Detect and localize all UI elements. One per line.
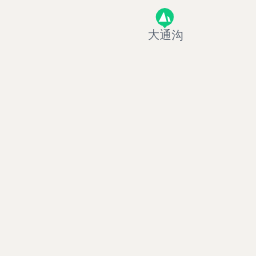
button[interactable]: Scenic spot 大通沟 (147, 6, 183, 42)
staticText: 大通沟 (148, 28, 184, 43)
